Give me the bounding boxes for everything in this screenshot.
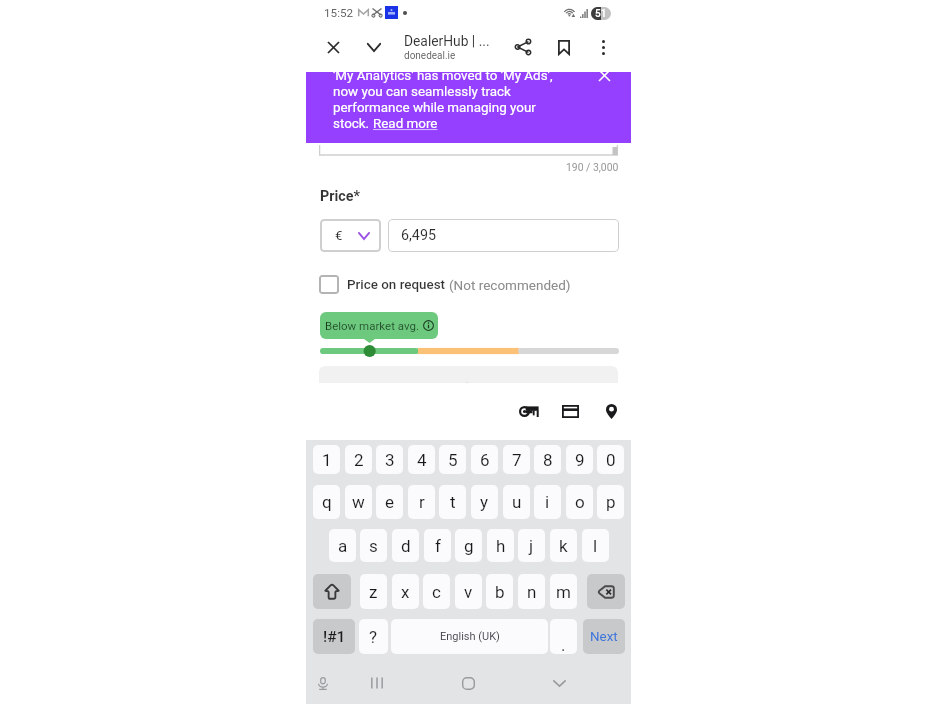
- staticText: 2: [354, 450, 364, 470]
- button[interactable]: m: [550, 574, 577, 609]
- staticText: 3: [385, 450, 395, 470]
- button[interactable]: v: [455, 574, 482, 609]
- staticText: e: [385, 492, 395, 512]
- button[interactable]: Addresses: [594, 394, 628, 428]
- button[interactable]: Payment methods: [553, 394, 587, 428]
- button[interactable]: 9: [566, 445, 593, 474]
- staticText: 0: [606, 450, 616, 470]
- staticText: d: [401, 536, 411, 556]
- button[interactable]: Hide keyboard: [542, 666, 576, 700]
- button[interactable]: Shift: [313, 574, 351, 609]
- staticText: now you can seamlessly track: [333, 84, 511, 100]
- button[interactable]: u: [503, 485, 530, 519]
- button[interactable]: Below market avg.: [320, 312, 438, 339]
- button[interactable]: k: [550, 529, 577, 562]
- button[interactable]: 8: [534, 445, 561, 474]
- staticText: 15:52: [324, 6, 354, 20]
- button[interactable]: b: [486, 574, 513, 609]
- button[interactable]: z: [360, 574, 387, 609]
- button[interactable]: Next: [583, 619, 625, 654]
- button[interactable]: l: [582, 529, 609, 562]
- button[interactable]: e: [376, 485, 403, 519]
- staticText: o: [575, 492, 585, 512]
- staticText: Price*: [320, 188, 360, 205]
- button[interactable]: y: [471, 485, 498, 519]
- button[interactable]: 6,495: [388, 219, 619, 252]
- button[interactable]: p: [597, 485, 624, 519]
- button[interactable]: d: [392, 529, 419, 562]
- staticText: 1: [322, 450, 332, 470]
- staticText: Price on request: [347, 277, 449, 293]
- button[interactable]: g: [455, 529, 482, 562]
- button[interactable]: n: [518, 574, 545, 609]
- button[interactable]: 4: [408, 445, 435, 474]
- staticText: Next: [590, 629, 618, 645]
- button[interactable]: o: [566, 485, 593, 519]
- button[interactable]: English (UK): [391, 619, 548, 654]
- button[interactable]: h: [487, 529, 514, 562]
- staticText: ?: [369, 627, 378, 647]
- button[interactable]: 0: [597, 445, 624, 474]
- staticText: j: [529, 536, 534, 556]
- staticText: g: [464, 536, 474, 556]
- staticText: b: [495, 582, 505, 602]
- button[interactable]: f: [424, 529, 451, 562]
- button[interactable]: Bookmark: [547, 30, 581, 64]
- staticText: Below market avg.: [325, 319, 419, 332]
- button[interactable]: .: [550, 619, 577, 654]
- button[interactable]: Price on request: [319, 275, 571, 294]
- button[interactable]: Recent apps: [360, 666, 394, 700]
- button[interactable]: i: [534, 485, 561, 519]
- button[interactable]: Expand: [356, 29, 392, 65]
- staticText: performance while managing your: [333, 100, 536, 116]
- staticText: .: [561, 635, 566, 654]
- button[interactable]: Passwords: [512, 394, 546, 428]
- button[interactable]: s: [360, 529, 387, 562]
- staticText: l: [593, 536, 598, 556]
- button[interactable]: r: [408, 485, 435, 519]
- button[interactable]: Close: [315, 29, 351, 65]
- button[interactable]: More options: [586, 30, 620, 64]
- button[interactable]: Read more: [373, 116, 438, 132]
- button[interactable]: 3: [376, 445, 403, 474]
- button[interactable]: Voice input: [306, 666, 340, 700]
- button[interactable]: 2: [345, 445, 372, 474]
- button[interactable]: x: [392, 574, 419, 609]
- staticText: 6: [480, 450, 490, 470]
- button[interactable]: Backspace: [587, 574, 625, 609]
- button[interactable]: t: [439, 485, 466, 519]
- button[interactable]: j: [518, 529, 545, 562]
- staticText: u: [512, 492, 522, 512]
- staticText: z: [369, 582, 378, 602]
- staticText: i: [545, 492, 550, 512]
- button[interactable]: q: [313, 485, 340, 519]
- staticText: 'My Analytics' has moved to 'My Ads',: [333, 72, 553, 84]
- staticText: 7: [512, 450, 522, 470]
- button[interactable]: c: [423, 574, 450, 609]
- button[interactable]: 7: [503, 445, 530, 474]
- button[interactable]: !#1: [313, 619, 355, 654]
- staticText: 51: [595, 8, 607, 20]
- button[interactable]: w: [345, 485, 372, 519]
- button[interactable]: Dismiss: [592, 72, 616, 87]
- staticText: v: [464, 582, 473, 602]
- button[interactable]: a: [329, 529, 356, 562]
- staticText: r: [419, 492, 425, 512]
- button[interactable]: 6: [471, 445, 498, 474]
- staticText: 8: [543, 450, 553, 470]
- button[interactable]: 5: [439, 445, 466, 474]
- staticText: €: [335, 228, 343, 243]
- button[interactable]: Home: [451, 666, 485, 700]
- staticText: 4: [417, 450, 427, 470]
- staticText: DealerHub | ...: [404, 33, 490, 49]
- staticText: n: [527, 582, 537, 602]
- staticText: 9: [575, 450, 585, 470]
- staticText: donedeal.ie: [404, 50, 456, 62]
- button[interactable]: 1: [313, 445, 340, 474]
- button[interactable]: Share: [506, 30, 540, 64]
- button[interactable]: €: [320, 219, 381, 252]
- button[interactable]: ?: [359, 619, 388, 654]
- staticText: k: [559, 536, 568, 556]
